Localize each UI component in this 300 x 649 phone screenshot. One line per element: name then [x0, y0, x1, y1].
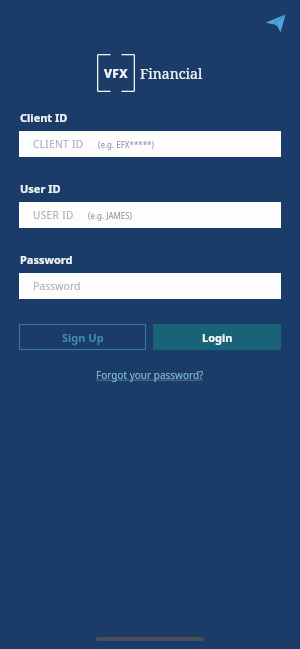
button[interactable]: Send	[260, 8, 290, 38]
button[interactable]: Password	[19, 273, 281, 299]
staticText: Financial	[140, 64, 203, 83]
button[interactable]: Forgot your password?	[92, 366, 208, 384]
button[interactable]: USER ID	[19, 202, 281, 228]
button[interactable]: CLIENT ID	[19, 131, 281, 157]
staticText: Password	[33, 279, 81, 293]
staticText: Client ID	[20, 110, 68, 125]
staticText: User ID	[20, 181, 61, 196]
staticText: CLIENT ID	[33, 137, 84, 151]
staticText: Login	[202, 330, 233, 345]
staticText: (e.g. JAMES)	[88, 210, 132, 221]
staticText: Forgot your password?	[96, 368, 204, 382]
staticText: VFX	[104, 65, 128, 81]
staticText: USER ID	[33, 208, 74, 222]
staticText: Sign Up	[62, 330, 104, 345]
button[interactable]: Sign Up	[19, 324, 146, 350]
staticText: Password	[20, 252, 73, 267]
staticText: (e.g. EFX*****)	[98, 139, 154, 150]
button[interactable]: Login	[153, 324, 281, 350]
